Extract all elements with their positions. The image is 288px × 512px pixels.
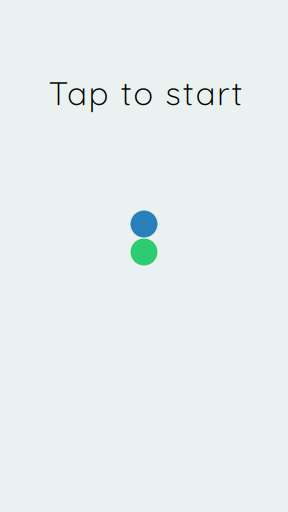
staticText: Tap to start bbox=[48, 72, 242, 114]
button[interactable]: Tap to start bbox=[0, 0, 288, 512]
